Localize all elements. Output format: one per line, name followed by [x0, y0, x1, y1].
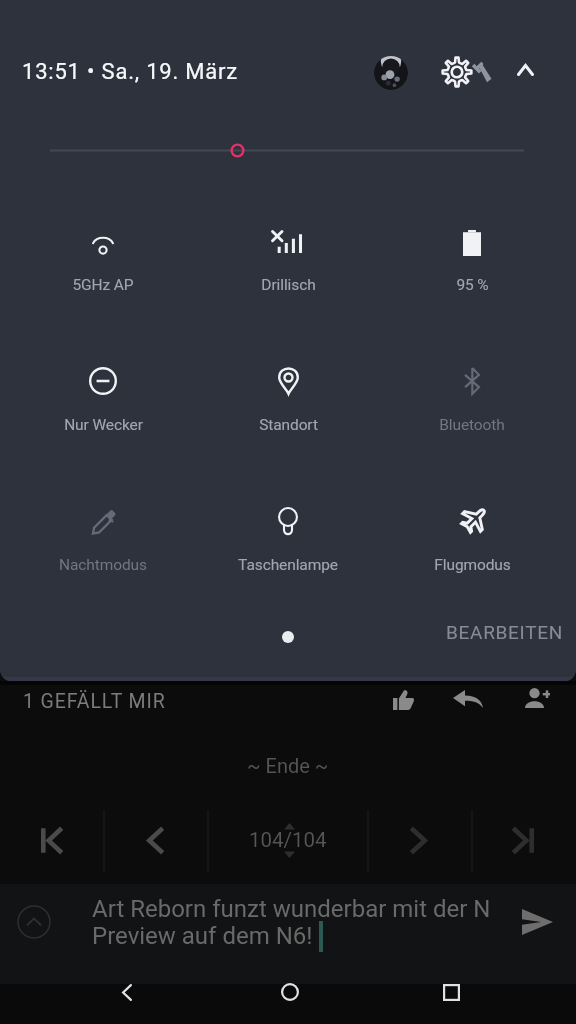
staticText: Drillisch: [261, 276, 316, 294]
button[interactable]: Antworten: [440, 671, 496, 727]
button[interactable]: [11, 341, 195, 446]
staticText: Standort: [259, 416, 318, 434]
staticText: Nachtmodus: [59, 556, 147, 574]
staticText: Bluetooth: [439, 416, 505, 434]
button[interactable]: Zurück: [0, 972, 192, 1012]
staticText: Art Reborn funzt wunderbar mit der N Pre…: [92, 895, 500, 950]
staticText: BEARBEITEN: [446, 621, 563, 643]
staticText: ~ Ende ~: [247, 754, 329, 777]
button[interactable]: Einklappen: [501, 47, 549, 95]
button[interactable]: Person hinzufügen: [509, 670, 565, 726]
button[interactable]: Weiter: [386, 808, 450, 872]
staticText: 5GHz AP: [72, 276, 134, 294]
staticText: Nur Wecker: [64, 416, 143, 434]
button[interactable]: [11, 205, 195, 310]
button[interactable]: [196, 481, 380, 586]
button[interactable]: 104/104: [208, 806, 368, 874]
staticText: 1 GEFÄLLT MIR: [23, 690, 166, 713]
button[interactable]: Gefällt mir: [375, 672, 431, 728]
staticText: Taschenlampe: [238, 556, 338, 574]
button[interactable]: Startbildschirm: [192, 972, 384, 1012]
button[interactable]: 13:51 • Sa., 19. März: [22, 59, 239, 85]
staticText: 13:51 • Sa., 19. März: [22, 59, 239, 85]
button[interactable]: [196, 341, 380, 446]
staticText: Flugmodus: [434, 556, 511, 574]
button[interactable]: 1 GEFÄLLT MIR: [0, 682, 576, 722]
button[interactable]: [380, 205, 564, 310]
button[interactable]: Art Reborn funzt wunderbar mit der N Pre…: [92, 895, 500, 950]
button[interactable]: Senden: [509, 894, 565, 950]
staticText: 95 %: [456, 276, 489, 294]
button[interactable]: Erweitern: [6, 894, 62, 950]
button[interactable]: Erste Seite: [20, 808, 84, 872]
button[interactable]: Zurück: [124, 808, 188, 872]
button[interactable]: [380, 481, 564, 586]
button[interactable]: Übersicht: [384, 972, 576, 1012]
button[interactable]: Helligkeit: [0, 130, 576, 170]
button[interactable]: Einstellungen: [438, 44, 494, 100]
button[interactable]: Letzte Seite: [490, 808, 554, 872]
button[interactable]: [11, 481, 195, 586]
button[interactable]: [196, 205, 380, 310]
button[interactable]: [380, 341, 564, 446]
button[interactable]: BEARBEITEN: [436, 611, 573, 653]
staticText: 104/104: [249, 828, 327, 852]
button[interactable]: Konto: [367, 49, 415, 97]
